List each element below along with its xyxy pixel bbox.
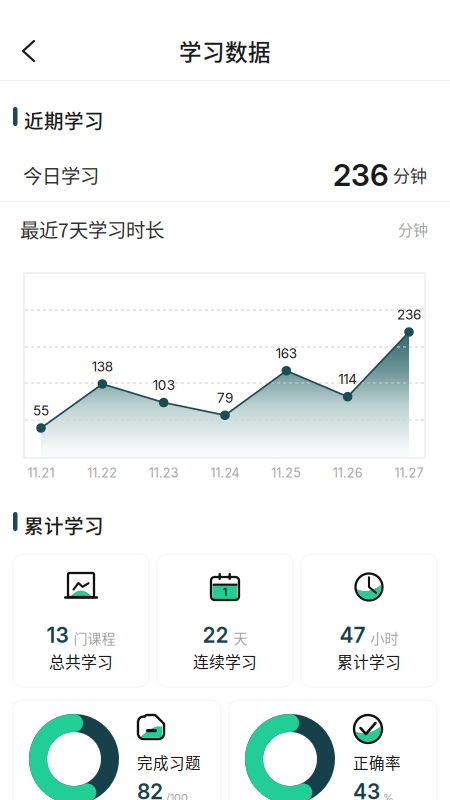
staticText: 236 [333, 157, 389, 193]
staticText: 11.25 [271, 465, 301, 480]
staticText: 天 [233, 627, 247, 648]
button[interactable]: 47 [301, 554, 437, 687]
staticText: 11.23 [149, 465, 179, 480]
staticText: 22 [202, 622, 228, 648]
staticText: % [383, 791, 394, 800]
staticText: 43 [353, 779, 380, 800]
staticText: 1 [223, 586, 227, 598]
staticText: 完成习题 [137, 751, 201, 773]
staticText: 11.27 [394, 465, 423, 480]
staticText: 55 [33, 402, 49, 419]
staticText: 正确率 [353, 751, 401, 773]
staticText: 163 [276, 345, 297, 361]
staticText: 138 [92, 358, 113, 375]
staticText: 门课程 [73, 627, 115, 648]
staticText: 今日学习 [23, 161, 99, 189]
button[interactable]: 正确率 [229, 700, 437, 800]
staticText: 学习数据 [179, 35, 271, 67]
staticText: 103 [153, 377, 175, 393]
staticText: 13 [46, 622, 68, 648]
staticText: 11.26 [333, 465, 363, 480]
staticText: /100 [166, 791, 188, 800]
staticText: 11.24 [210, 465, 239, 480]
staticText: 11.21 [27, 465, 54, 480]
staticText: 11.22 [87, 465, 117, 480]
staticText: 累计学习 [337, 650, 401, 672]
button[interactable]: Back [0, 25, 58, 77]
staticText: 小时 [370, 627, 398, 648]
staticText: 82 [137, 779, 163, 800]
staticText: 总共学习 [49, 650, 113, 672]
staticText: 236 [397, 306, 421, 323]
staticText: 最近7天学习时长 [20, 215, 164, 243]
staticText: 47 [339, 622, 365, 648]
staticText: 累计学习 [24, 511, 104, 539]
button[interactable]: 完成习题 [13, 700, 221, 800]
button[interactable]: 13 [13, 554, 149, 687]
staticText: 79 [217, 390, 233, 406]
staticText: 分钟 [389, 163, 427, 187]
button[interactable]: 1 [157, 554, 293, 687]
staticText: 114 [338, 371, 357, 387]
staticText: 连续学习 [193, 650, 257, 672]
staticText: 分钟 [398, 218, 428, 240]
staticText: 近期学习 [24, 106, 104, 134]
